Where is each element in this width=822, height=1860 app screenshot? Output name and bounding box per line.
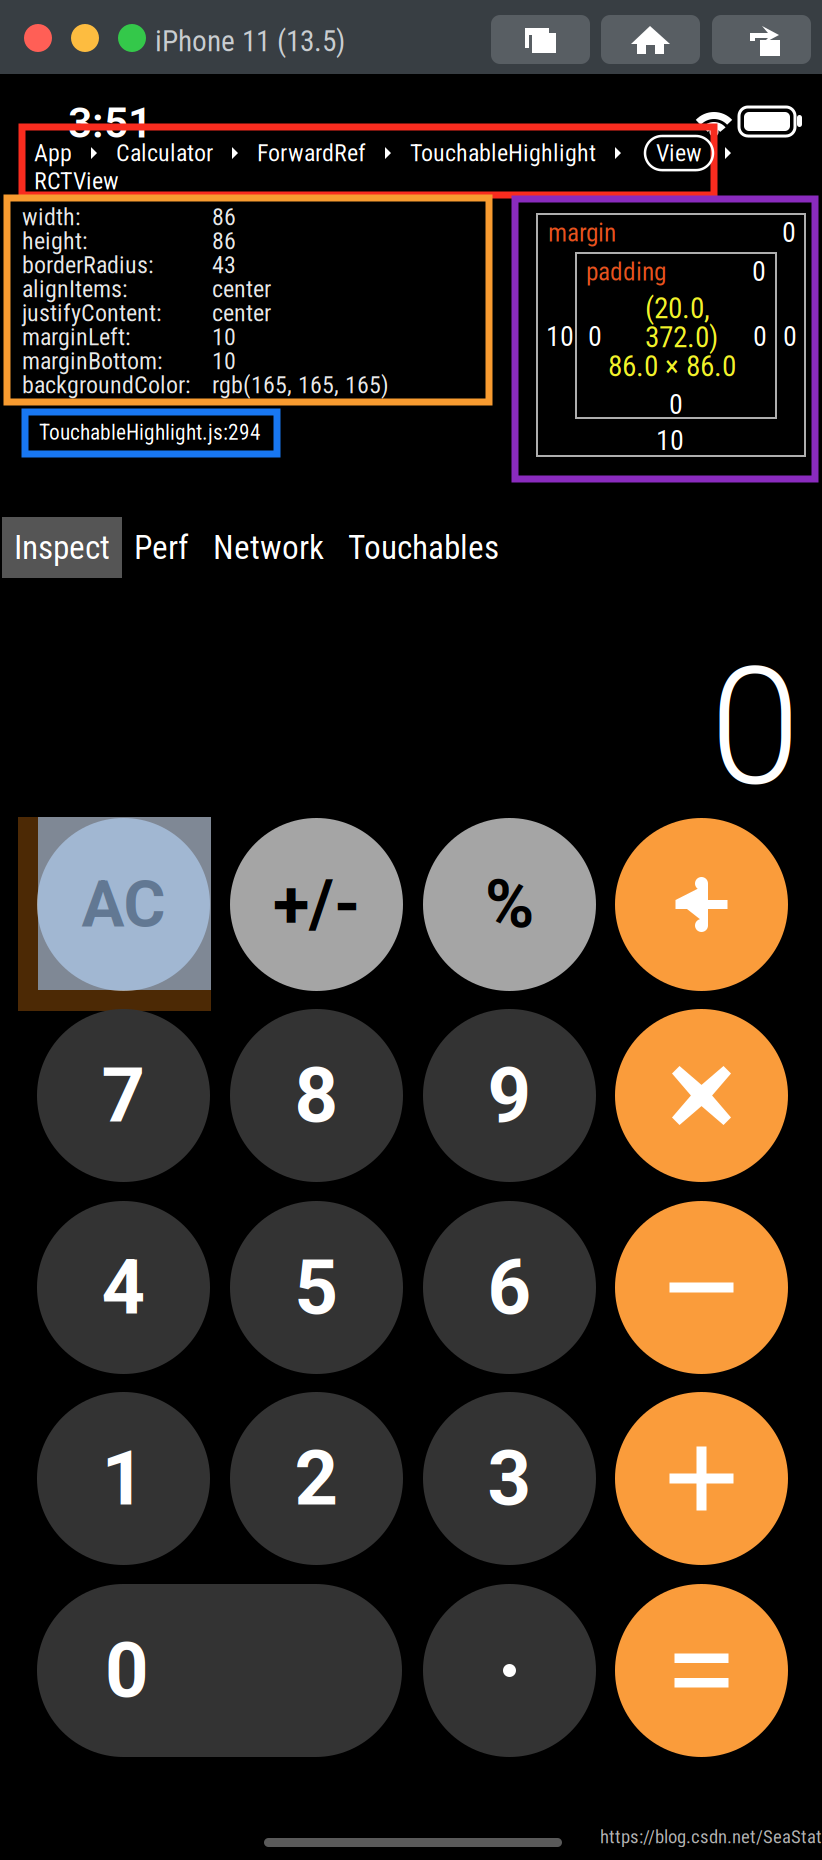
staticText: Network: [213, 528, 324, 567]
staticText: justifyContent:: [22, 299, 162, 327]
staticText: Calculator: [116, 139, 213, 167]
button[interactable]: Divide: [615, 818, 788, 991]
staticText: RCTView: [34, 167, 119, 195]
staticText: App: [34, 139, 72, 167]
button[interactable]: Touchables: [336, 517, 511, 578]
button[interactable]: 6: [423, 1201, 596, 1374]
staticText: borderRadius:: [22, 251, 154, 279]
staticText: https://blog.csdn.net/SeaState: [600, 1826, 822, 1848]
staticText: iPhone 11 (13.5): [155, 24, 345, 58]
staticText: Touchables: [348, 528, 499, 567]
button[interactable]: 8: [230, 1009, 403, 1182]
staticText: 0: [782, 216, 796, 249]
staticText: 1: [101, 1434, 145, 1523]
button[interactable]: Multiply: [615, 1009, 788, 1182]
staticText: 86: [212, 227, 236, 255]
button[interactable]: 5: [230, 1201, 403, 1374]
staticText: width:: [22, 203, 81, 231]
button[interactable]: AC: [37, 818, 210, 991]
staticText: 5: [294, 1243, 338, 1332]
button[interactable]: Equals: [615, 1584, 788, 1757]
staticText: TouchableHighlight: [410, 139, 596, 167]
staticText: backgroundColor:: [22, 371, 191, 399]
staticText: 0: [752, 255, 766, 288]
button[interactable]: Inspect: [2, 517, 122, 578]
staticText: (20.0,: [645, 291, 710, 325]
button[interactable]: Home: [601, 15, 700, 64]
staticText: center: [212, 299, 271, 327]
staticText: 2: [294, 1434, 338, 1523]
staticText: marginBottom:: [22, 347, 163, 375]
button[interactable]: Subtract: [615, 1201, 788, 1374]
staticText: padding: [586, 257, 666, 287]
staticText: 10: [212, 347, 236, 375]
button[interactable]: Decimal point: [423, 1584, 596, 1757]
staticText: ForwardRef: [257, 139, 366, 167]
staticText: 9: [487, 1051, 531, 1140]
staticText: 43: [212, 251, 236, 279]
staticText: 4: [101, 1243, 145, 1332]
staticText: 0: [710, 632, 800, 822]
staticText: 86.0 × 86.0: [608, 349, 736, 383]
staticText: +/-: [273, 865, 360, 943]
staticText: 3:51: [68, 98, 152, 148]
staticText: 0: [588, 320, 602, 353]
button[interactable]: Network: [201, 517, 336, 578]
button[interactable]: 3: [423, 1392, 596, 1565]
staticText: 86: [212, 203, 236, 231]
button[interactable]: %: [423, 818, 596, 991]
staticText: 7: [101, 1051, 145, 1140]
staticText: 0: [669, 388, 683, 421]
staticText: View: [656, 139, 702, 167]
staticText: marginLeft:: [22, 323, 131, 351]
button[interactable]: +/-: [230, 818, 403, 991]
staticText: Inspect: [14, 528, 110, 567]
button[interactable]: 9: [423, 1009, 596, 1182]
staticText: 10: [212, 323, 236, 351]
staticText: 0: [105, 1626, 149, 1715]
staticText: 372.0): [645, 320, 718, 354]
staticText: height:: [22, 227, 88, 255]
staticText: rgb(165, 165, 165): [212, 371, 389, 399]
staticText: 0: [753, 320, 767, 353]
staticText: Perf: [134, 528, 189, 567]
button[interactable]: 4: [37, 1201, 210, 1374]
staticText: 3: [487, 1434, 531, 1523]
button[interactable]: 7: [37, 1009, 210, 1182]
staticText: 10: [546, 320, 574, 353]
button[interactable]: Perf: [122, 517, 201, 578]
staticText: margin: [548, 218, 616, 248]
staticText: 6: [487, 1243, 531, 1332]
staticText: alignItems:: [22, 275, 128, 303]
staticText: TouchableHighlight.js:294: [39, 420, 261, 445]
button[interactable]: 2: [230, 1392, 403, 1565]
button[interactable]: Screenshot: [491, 15, 590, 64]
staticText: %: [485, 865, 534, 943]
staticText: AC: [81, 867, 165, 942]
staticText: 8: [294, 1051, 338, 1140]
button[interactable]: 0: [37, 1584, 402, 1757]
button[interactable]: Add: [615, 1392, 788, 1565]
staticText: 0: [783, 320, 797, 353]
staticText: 10: [656, 424, 684, 457]
staticText: center: [212, 275, 271, 303]
button[interactable]: Rotate: [712, 15, 811, 64]
button[interactable]: 1: [37, 1392, 210, 1565]
